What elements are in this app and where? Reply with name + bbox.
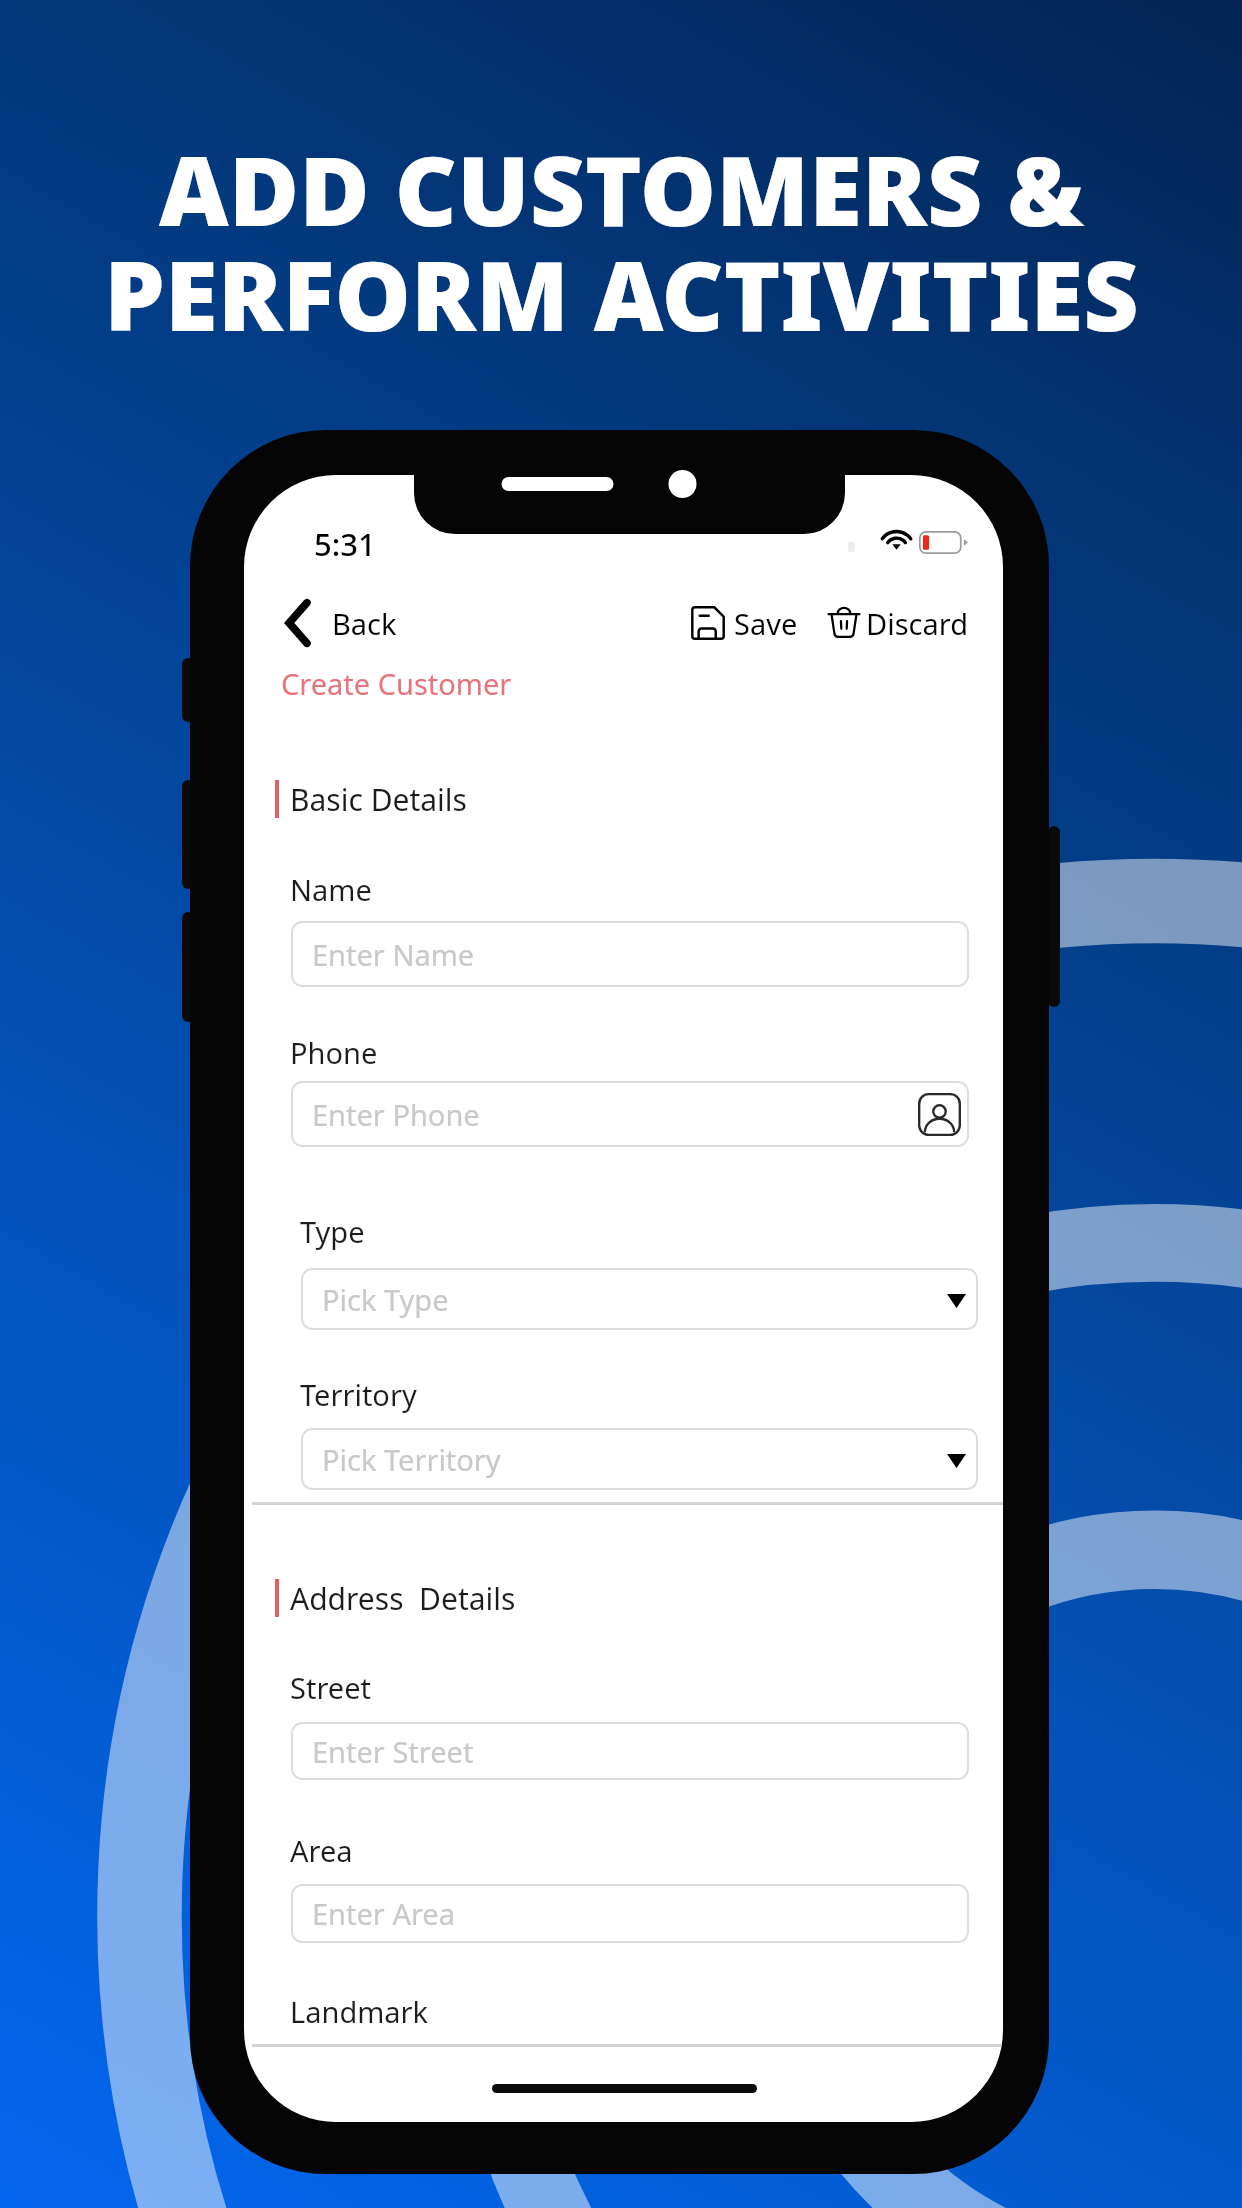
staticText: Enter Area <box>312 1894 455 1933</box>
button[interactable]: Open picker <box>947 1294 966 1308</box>
staticText: Pick Territory <box>322 1440 501 1479</box>
staticText: 5:31 <box>314 523 376 565</box>
staticText: Pick Type <box>322 1280 449 1319</box>
button[interactable]: Open picker <box>947 1454 966 1468</box>
staticText: Enter Phone <box>312 1095 480 1134</box>
staticText: Landmark <box>290 1992 429 2031</box>
staticText: Basic Details <box>290 779 467 820</box>
staticText: Address Details <box>290 1578 516 1619</box>
staticText: Street <box>290 1668 371 1707</box>
button[interactable] <box>291 1722 969 1780</box>
staticText: Enter Name <box>312 935 475 974</box>
staticText: Name <box>290 870 372 909</box>
button[interactable] <box>301 1268 978 1330</box>
button[interactable] <box>291 1081 969 1147</box>
button[interactable]: Discard <box>822 587 970 659</box>
staticText: Enter Street <box>312 1732 474 1771</box>
staticText: Territory <box>300 1375 417 1414</box>
staticText: ADD CUSTOMERS & <box>159 123 1084 254</box>
button[interactable]: Pick contact <box>918 1093 961 1136</box>
staticText: Type <box>300 1212 365 1251</box>
button[interactable] <box>301 1428 978 1490</box>
button[interactable]: Back <box>272 587 444 659</box>
staticText: PERFORM ACTIVITIES <box>104 228 1139 359</box>
staticText: Discard <box>866 604 968 643</box>
button[interactable] <box>291 1884 969 1943</box>
staticText: Save <box>734 604 798 643</box>
button[interactable]: Save <box>684 587 800 659</box>
staticText: Phone <box>290 1033 378 1072</box>
staticText: Back <box>332 604 397 643</box>
staticText: Area <box>290 1831 353 1870</box>
staticText: Create Customer <box>281 664 512 703</box>
button[interactable] <box>291 921 969 987</box>
